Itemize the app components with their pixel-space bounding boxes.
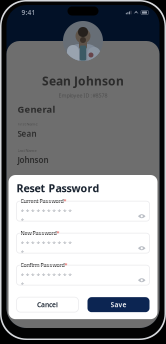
button[interactable]: Current Password xyxy=(8,201,157,221)
staticText: First Name xyxy=(17,121,37,127)
staticText: Confirm Password xyxy=(20,261,64,268)
button[interactable]: Confirm Password xyxy=(8,265,157,285)
button[interactable]: New Password xyxy=(8,233,157,253)
staticText: Cancel xyxy=(37,300,58,309)
staticText: New Password xyxy=(20,229,56,236)
staticText: Current Password xyxy=(20,197,63,204)
staticText: Johnson xyxy=(17,155,48,165)
staticText: * xyxy=(64,261,67,268)
staticText: Reset Password xyxy=(16,181,99,195)
staticText: General xyxy=(17,103,55,115)
staticText: Sean Johnson xyxy=(42,73,124,89)
button[interactable]: Cancel xyxy=(16,297,78,312)
staticText: Last Name xyxy=(17,148,36,153)
staticText: *********** xyxy=(20,271,72,289)
button[interactable]: Save xyxy=(87,297,149,312)
staticText: *********** xyxy=(20,239,72,257)
staticText: Sean xyxy=(17,128,36,139)
staticText: Employee ID : #8578 xyxy=(58,92,107,99)
staticText: * xyxy=(56,229,59,236)
staticText: *********** xyxy=(20,207,72,225)
staticText: * xyxy=(63,197,66,204)
staticText: Save xyxy=(110,300,126,309)
staticText: 9:41 xyxy=(21,8,35,17)
